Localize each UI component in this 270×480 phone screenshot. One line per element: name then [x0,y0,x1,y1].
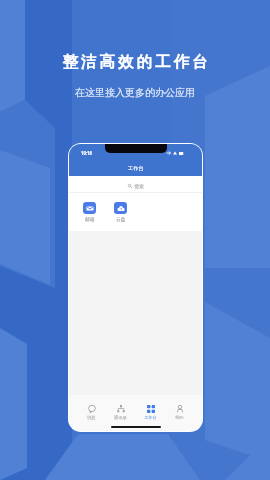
button[interactable]: 云盘 [114,202,127,222]
button[interactable]: 工作台 [144,405,157,420]
button[interactable]: 通讯录 [114,405,127,420]
staticText: 工作台 [144,415,157,420]
staticText: 我的 [175,415,184,420]
button[interactable]: 邮箱 [83,202,96,222]
staticText: 工作台 [128,165,144,171]
staticText: 搜索 [134,183,144,189]
staticText: 整洁高效的工作台 [61,52,209,72]
staticText: 云盘 [116,216,126,222]
staticText: 10:16 [81,150,93,156]
staticText: 邮箱 [85,216,95,222]
staticText: 消息 [87,415,96,420]
staticText: 在这里接入更多的办公应用 [75,86,195,99]
button[interactable]: 我的 [175,405,184,420]
staticText: 通讯录 [114,415,127,420]
button[interactable]: 消息 [87,405,96,420]
